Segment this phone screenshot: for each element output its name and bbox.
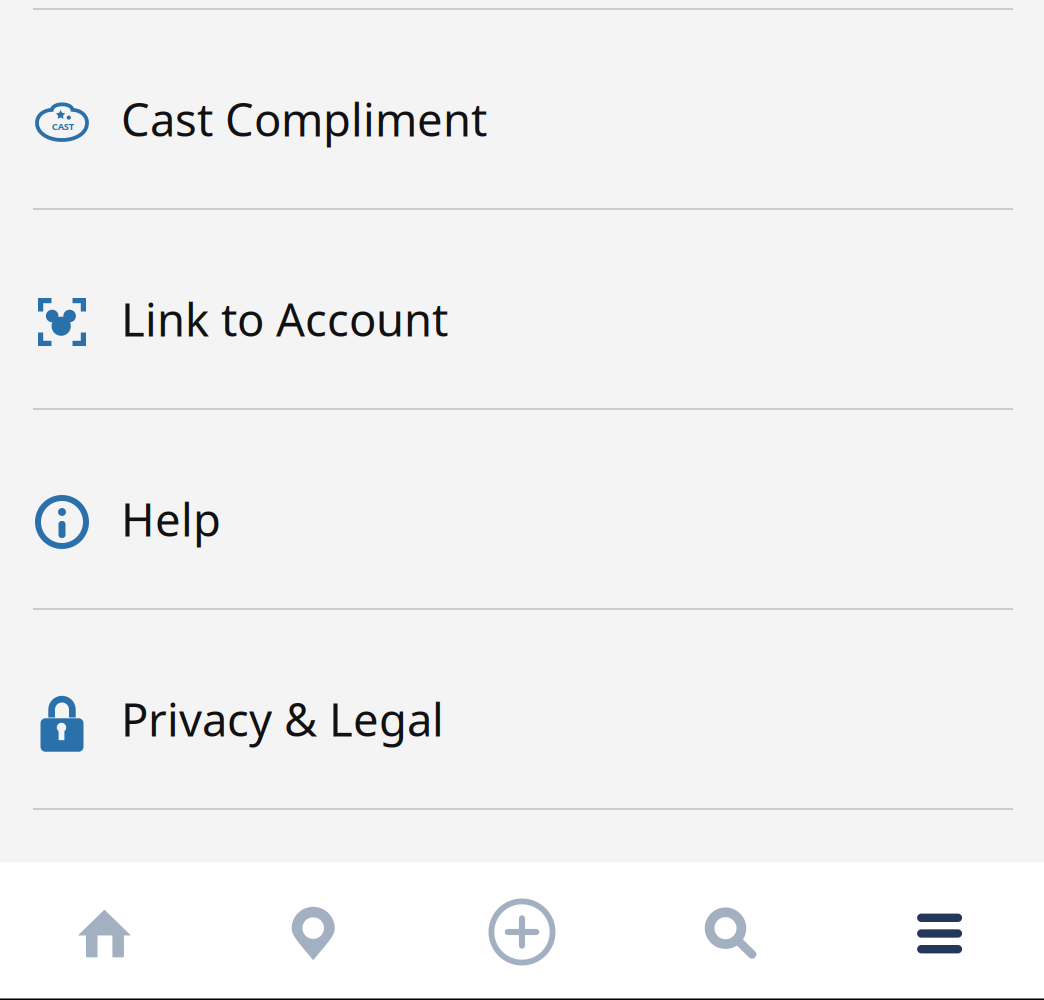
button[interactable]: Map (209, 862, 418, 998)
button[interactable]: Link to Account (0, 210, 1044, 410)
staticText: Help (121, 489, 221, 549)
staticText: CAST (52, 120, 74, 133)
button[interactable]: Help (0, 410, 1044, 610)
button[interactable]: Home (0, 862, 209, 998)
staticText: Link to Account (121, 289, 448, 349)
staticText: Cast Compliment (121, 89, 487, 149)
button[interactable]: CAST (0, 10, 1044, 210)
button[interactable]: Privacy & Legal (0, 610, 1044, 810)
staticText: Privacy & Legal (121, 689, 444, 749)
button[interactable]: Menu (835, 862, 1044, 998)
button[interactable]: Create (418, 862, 626, 998)
button[interactable]: Search (626, 862, 835, 998)
